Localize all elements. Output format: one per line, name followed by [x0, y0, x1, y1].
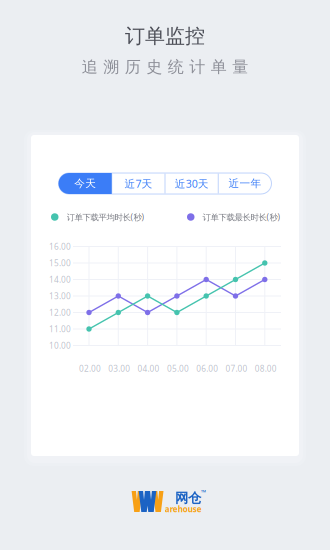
staticText: 16.00	[49, 241, 71, 252]
staticText: 订单下载平均时长(秒)	[66, 211, 144, 223]
staticText: 今天	[74, 177, 96, 190]
staticText: 网仓	[175, 490, 201, 506]
staticText: 13.00	[49, 290, 71, 302]
staticText: 02.00	[79, 363, 101, 374]
staticText: 04.00	[138, 363, 160, 374]
staticText: 14.00	[49, 274, 71, 285]
staticText: 近7天	[124, 176, 152, 191]
staticText: 订单下载最长时长(秒)	[202, 211, 280, 223]
staticText: 05.00	[167, 363, 189, 374]
button[interactable]: 近7天	[112, 173, 165, 194]
staticText: 11.00	[49, 323, 71, 335]
button[interactable]: 近30天	[165, 173, 218, 194]
button[interactable]: 今天	[58, 173, 112, 194]
staticText: 近30天	[175, 176, 209, 191]
staticText: 追溯历史统计单量	[82, 57, 248, 77]
staticText: 10.00	[49, 340, 71, 351]
staticText: arehouse	[165, 504, 202, 514]
staticText: ™	[201, 488, 206, 497]
staticText: 08.00	[255, 363, 277, 374]
staticText: 12.00	[49, 307, 71, 318]
staticText: 03.00	[108, 363, 130, 374]
staticText: 近一年	[228, 177, 261, 190]
staticText: 订单监控	[125, 24, 205, 48]
staticText: 07.00	[225, 363, 247, 374]
staticText: 15.00	[49, 257, 71, 269]
staticText: 06.00	[196, 363, 218, 374]
button[interactable]: 近一年	[218, 173, 271, 194]
